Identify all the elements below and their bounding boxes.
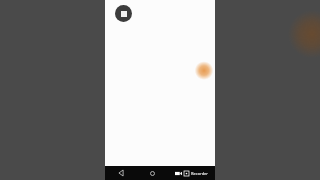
button[interactable]: Back xyxy=(105,166,137,180)
button[interactable]: Stop recording xyxy=(115,5,132,22)
button[interactable]: Home xyxy=(137,166,168,180)
staticText: Recorder xyxy=(191,171,209,176)
button[interactable]: Recorder xyxy=(168,166,215,180)
